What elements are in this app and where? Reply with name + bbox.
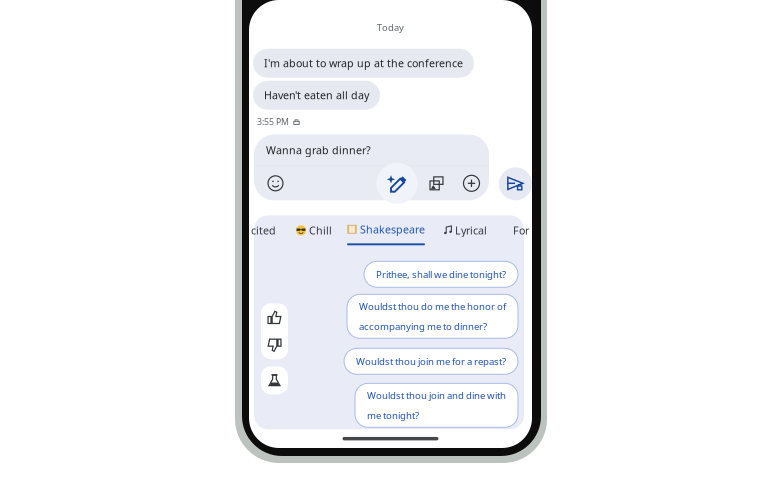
button[interactable]: Wouldst thou do me the honor of [347,294,518,338]
button[interactable]: Prithee, shall we dine tonight? [364,261,518,287]
staticText: Today [377,21,404,34]
staticText: Wouldst thou join me for a repast? [356,355,506,368]
button[interactable]: Wouldst thou join me for a repast? [344,348,518,374]
button[interactable]: Shakespeare [347,215,425,245]
button[interactable]: Chill [296,215,332,245]
staticText: Wanna grab dinner? [266,143,371,157]
button[interactable]: cited [255,215,280,245]
staticText: Lyrical [455,223,487,238]
button[interactable]: More options [455,167,487,199]
button[interactable]: Send [499,167,532,200]
button[interactable]: Good suggestion [261,303,288,331]
staticText: Wouldst thou do me the honor of [359,300,506,313]
button[interactable]: Emoji [261,167,289,199]
staticText: Shakespeare [360,222,425,237]
button[interactable]: Wouldst thou join and dine with [355,383,518,427]
staticText: I'm about to wrap up at the conference [264,56,463,70]
staticText: Prithee, shall we dine tonight? [376,268,506,281]
staticText: Haven't eaten all day [264,88,369,102]
staticText: me tonight? [367,409,419,422]
button[interactable]: Magic Compose [376,163,417,204]
staticText: 3:55 PM [257,116,289,127]
staticText: For [513,223,529,238]
button[interactable]: For [513,215,529,245]
staticText: Chill [309,223,332,238]
staticText: cited [251,223,276,238]
button[interactable]: Bad suggestion [261,331,288,359]
button[interactable]: Attach image [417,167,455,199]
staticText: Wouldst thou join and dine with [367,389,506,402]
button[interactable]: Labs [261,366,288,394]
button[interactable]: Lyrical [443,215,487,245]
staticText: accompanying me to dinner? [359,320,487,333]
